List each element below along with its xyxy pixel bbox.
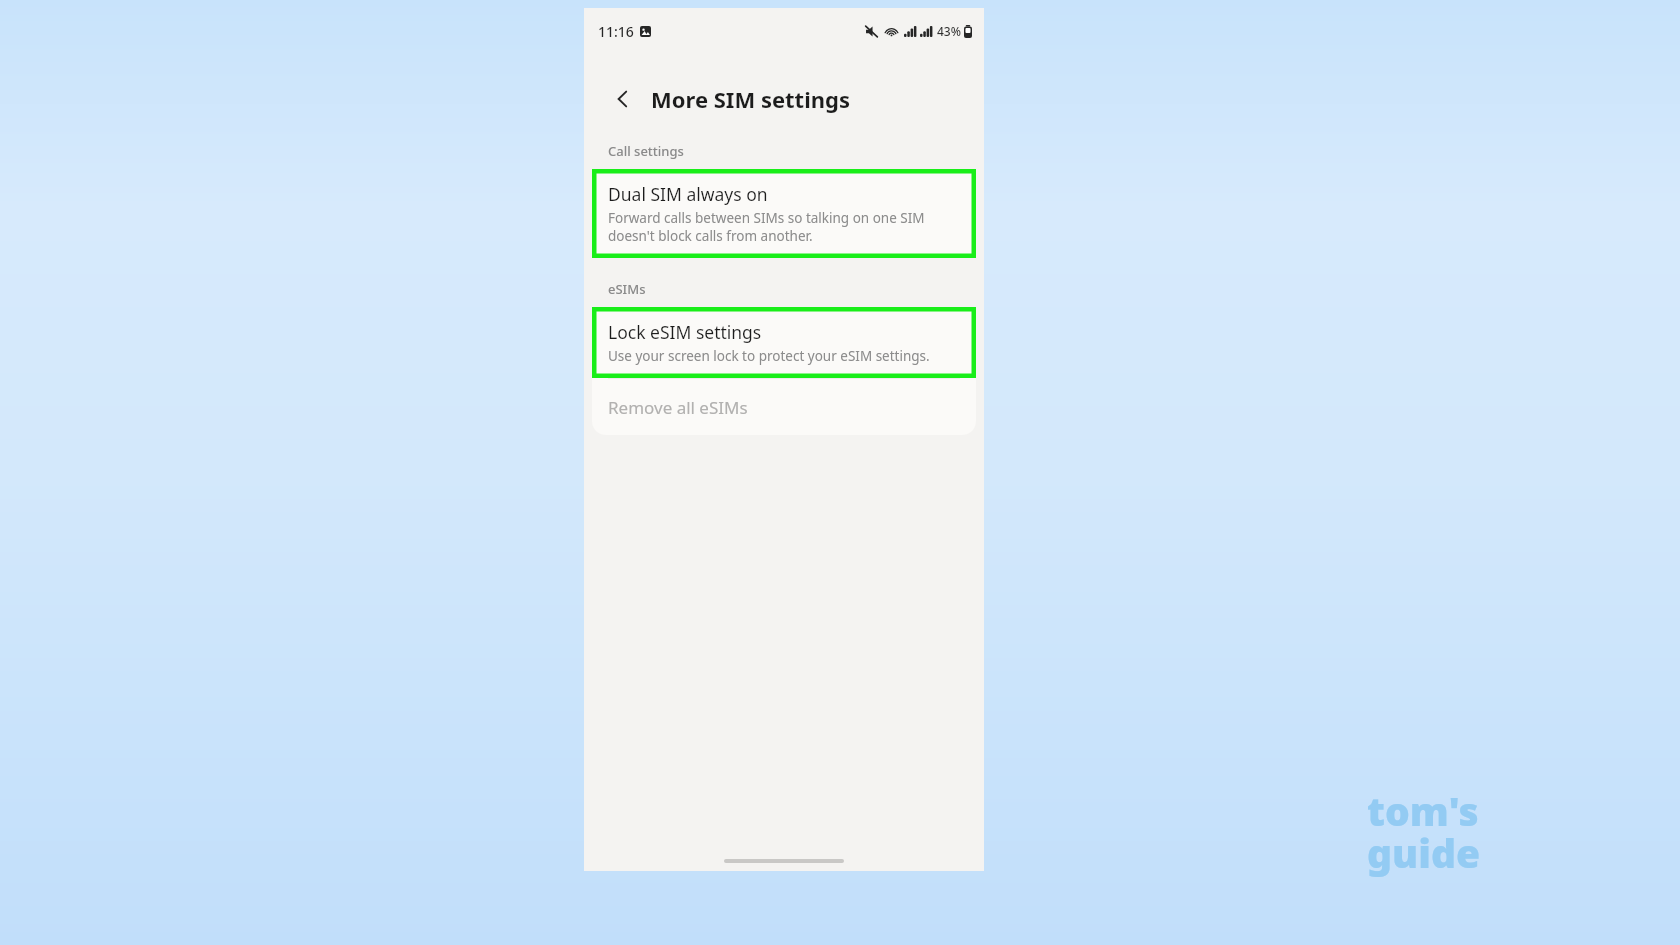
staticText: Dual SIM always on [608, 182, 768, 206]
staticText: Lock eSIM settings [608, 320, 762, 344]
staticText: 11:16 [598, 22, 634, 41]
staticText: 43% [937, 23, 961, 39]
button[interactable]: Back [606, 82, 640, 116]
staticText: guide [1367, 826, 1481, 879]
button[interactable]: Dual SIM always on [592, 169, 976, 258]
button[interactable]: Lock eSIM settings [592, 307, 976, 378]
staticText: Call settings [608, 142, 684, 160]
staticText: More SIM settings [651, 84, 850, 114]
staticText: eSIMs [608, 280, 646, 298]
staticText: Remove all eSIMs [608, 396, 748, 419]
staticText: Forward calls between SIMs so talking on… [608, 209, 925, 245]
staticText: Use your screen lock to protect your eSI… [608, 347, 930, 365]
button[interactable]: Remove all eSIMs [592, 379, 976, 435]
staticText: tom's [1367, 784, 1479, 837]
